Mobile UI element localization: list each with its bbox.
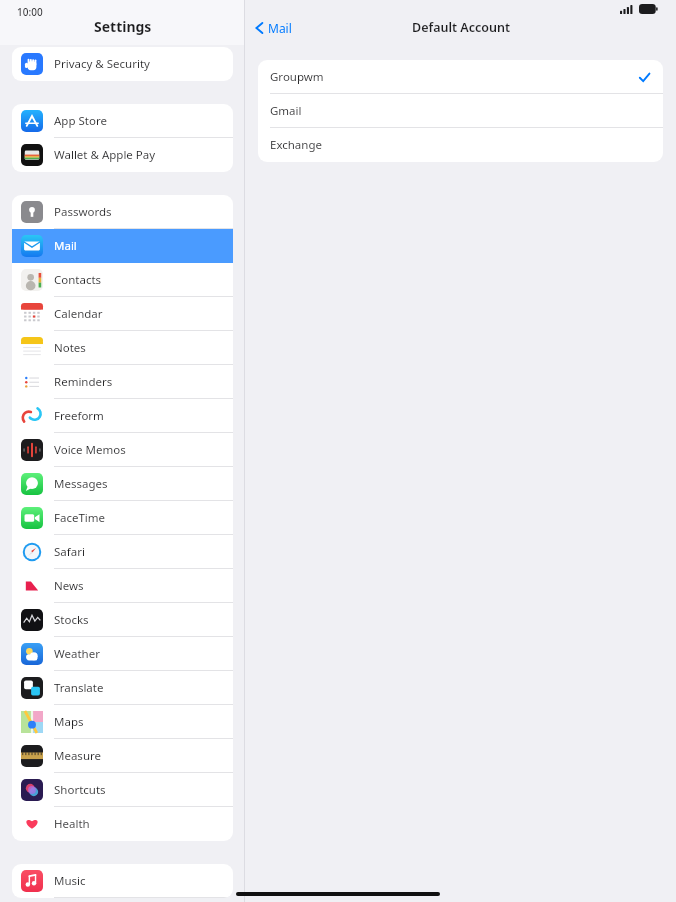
button[interactable]: App Store (12, 104, 233, 138)
button[interactable]: Passwords (12, 195, 233, 229)
button[interactable]: Maps (12, 705, 233, 739)
button[interactable]: Measure (12, 739, 233, 773)
button[interactable]: Notes (12, 331, 233, 365)
button[interactable]: Safari (12, 535, 233, 569)
staticText: Mail (268, 20, 292, 36)
button[interactable]: Privacy & Security (12, 47, 233, 81)
staticText: Stocks (54, 612, 89, 628)
staticText: Measure (54, 748, 101, 764)
staticText: Messages (54, 476, 108, 492)
staticText: Gmail (270, 103, 302, 119)
staticText: Health (54, 816, 90, 832)
button[interactable]: Weather (12, 637, 233, 671)
staticText: Exchange (270, 137, 322, 153)
button[interactable]: Translate (12, 671, 233, 705)
staticText: 10:00 (17, 5, 43, 19)
button[interactable]: Groupwm (258, 60, 663, 94)
staticText: Mail (54, 238, 77, 254)
staticText: Safari (54, 544, 85, 560)
button[interactable]: Mail (12, 229, 233, 263)
staticText: Reminders (54, 374, 113, 390)
button[interactable]: Health (12, 807, 233, 841)
staticText: App Store (54, 113, 107, 129)
button[interactable]: Mail (245, 17, 300, 39)
button[interactable]: Messages (12, 467, 233, 501)
staticText: Privacy & Security (54, 56, 150, 72)
button[interactable]: Reminders (12, 365, 233, 399)
button[interactable]: Voice Memos (12, 433, 233, 467)
button[interactable]: Music (12, 864, 233, 898)
staticText: Passwords (54, 204, 112, 220)
staticText: Music (54, 873, 86, 889)
button[interactable]: Contacts (12, 263, 233, 297)
staticText: Notes (54, 340, 86, 356)
button[interactable]: Gmail (258, 94, 663, 128)
button[interactable]: Freeform (12, 399, 233, 433)
staticText: News (54, 578, 84, 594)
staticText: Shortcuts (54, 782, 106, 798)
button[interactable]: News (12, 569, 233, 603)
button[interactable]: Wallet & Apple Pay (12, 138, 233, 172)
staticText: Contacts (54, 272, 102, 288)
staticText: Settings (94, 17, 152, 36)
staticText: Translate (54, 680, 104, 696)
staticText: Groupwm (270, 69, 324, 85)
button[interactable]: FaceTime (12, 501, 233, 535)
staticText: FaceTime (54, 510, 106, 526)
staticText: Voice Memos (54, 442, 126, 458)
button[interactable]: Stocks (12, 603, 233, 637)
staticText: Calendar (54, 306, 103, 322)
button[interactable]: Calendar (12, 297, 233, 331)
staticText: Maps (54, 714, 84, 730)
staticText: Default Account (412, 19, 510, 36)
staticText: Wallet & Apple Pay (54, 147, 156, 163)
staticText: Freeform (54, 408, 104, 424)
button[interactable]: Shortcuts (12, 773, 233, 807)
staticText: Weather (54, 646, 100, 662)
button[interactable]: Exchange (258, 128, 663, 162)
